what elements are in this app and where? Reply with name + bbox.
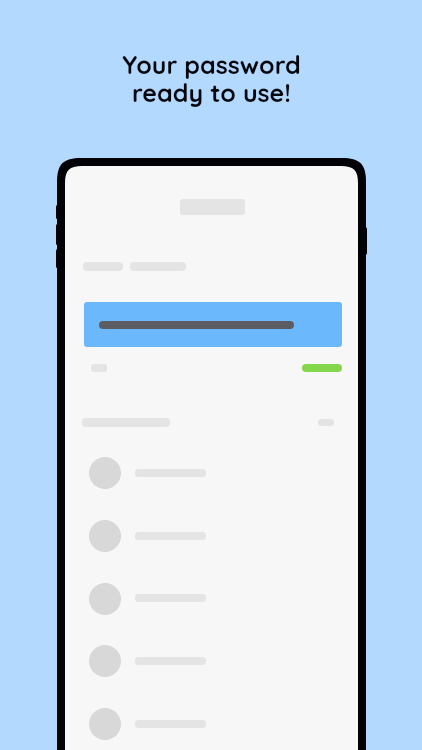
button[interactable] bbox=[302, 364, 342, 372]
button[interactable] bbox=[65, 572, 358, 624]
button[interactable] bbox=[65, 447, 358, 499]
button[interactable]: See all bbox=[318, 419, 334, 426]
button[interactable] bbox=[65, 510, 358, 562]
button[interactable] bbox=[65, 635, 358, 687]
staticText: Your password ready to use! bbox=[122, 49, 301, 109]
button[interactable] bbox=[65, 698, 358, 750]
button[interactable]: Copy password bbox=[84, 302, 342, 347]
